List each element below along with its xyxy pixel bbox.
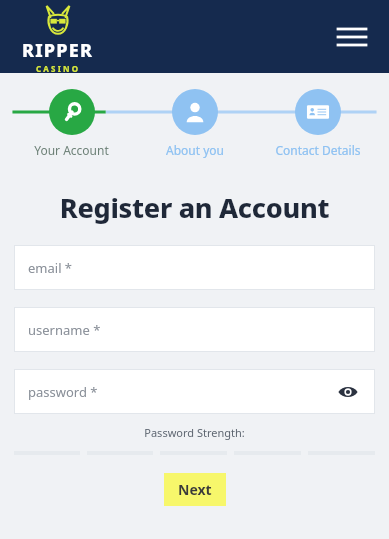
button[interactable]: email * <box>14 245 375 290</box>
staticText: CASINO <box>36 63 81 74</box>
staticText: Password Strength: <box>0 425 389 440</box>
staticText: Contact Details <box>275 142 361 158</box>
button[interactable]: Contact Details <box>256 89 379 158</box>
button[interactable]: About you <box>133 89 256 158</box>
button[interactable]: username * <box>14 307 375 352</box>
staticText: Register an Account <box>0 189 389 226</box>
staticText: Next <box>178 480 212 499</box>
button[interactable]: Show password <box>335 379 361 405</box>
button[interactable]: Menu <box>335 20 369 54</box>
staticText: password * <box>28 383 98 401</box>
staticText: RIPPER <box>22 38 94 63</box>
button[interactable]: Next <box>164 473 226 506</box>
staticText: email * <box>28 259 73 277</box>
staticText: username * <box>28 321 101 339</box>
button[interactable]: password * <box>14 369 375 414</box>
staticText: Your Account <box>34 142 109 158</box>
staticText: About you <box>166 142 224 158</box>
button[interactable]: Your Account <box>10 89 133 158</box>
button[interactable]: Ripper Casino home <box>22 5 94 74</box>
